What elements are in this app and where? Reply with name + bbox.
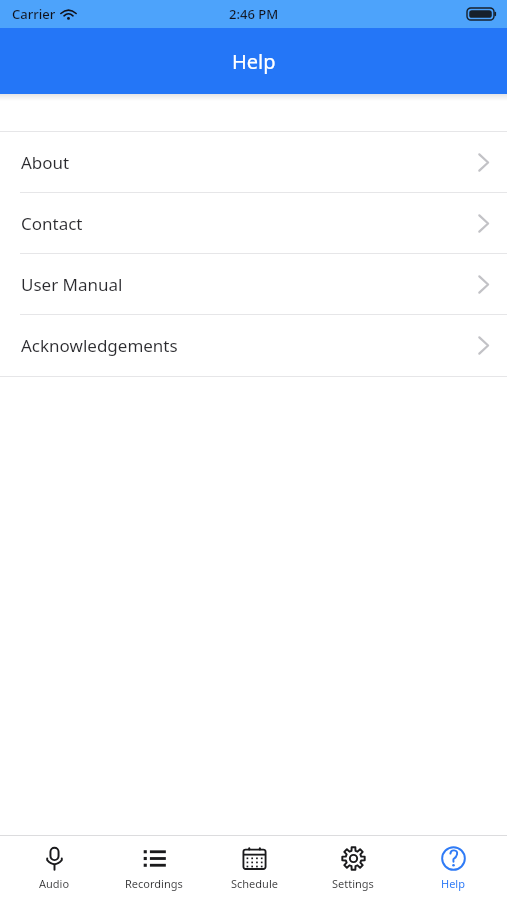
button[interactable]: Recordings [108,836,200,900]
staticText: 2:46 PM [229,5,279,23]
staticText: Carrier [12,5,56,23]
button[interactable]: Contact [0,193,507,254]
staticText: Help [232,48,276,75]
button[interactable]: User Manual [0,254,507,315]
staticText: Acknowledgements [21,334,178,357]
staticText: Audio [39,876,70,891]
button[interactable]: Acknowledgements [0,315,507,376]
staticText: Settings [332,876,374,891]
button[interactable]: About [0,132,507,193]
staticText: Schedule [231,876,278,891]
button[interactable]: Audio [8,836,100,900]
button[interactable]: Help [407,836,499,900]
staticText: Contact [21,212,83,235]
staticText: Help [441,876,465,891]
staticText: User Manual [21,273,123,296]
staticText: About [21,151,70,174]
button[interactable]: Settings [307,836,399,900]
staticText: Recordings [125,876,183,891]
button[interactable]: Schedule [208,836,300,900]
